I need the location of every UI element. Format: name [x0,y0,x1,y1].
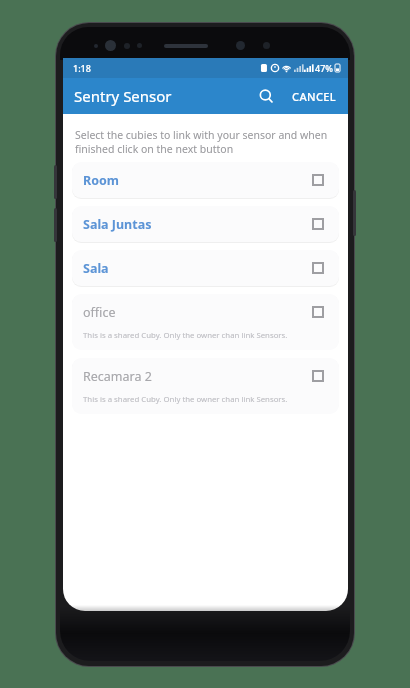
staticText: Sentry Sensor [74,86,172,106]
staticText: office [83,304,116,321]
button: office [72,294,339,350]
button[interactable]: Search [249,79,283,113]
staticText: This is a shared Cuby. Only the owner ch… [83,394,288,405]
staticText: This is a shared Cuby. Only the owner ch… [83,330,288,341]
staticText: Room [83,172,120,189]
button[interactable]: Select Sala Juntas [308,214,328,234]
button[interactable]: Sala Juntas [72,206,339,242]
button: Select office [308,302,328,322]
button: Select Recamara 2 [308,366,328,386]
staticText: Select the cubies to link with your sens… [75,128,328,156]
button[interactable]: Room [72,162,339,198]
button[interactable]: CANCEL [283,81,346,112]
staticText: CANCEL [292,89,337,104]
staticText: Sala Juntas [83,216,152,233]
staticText: Sala [83,260,109,277]
button[interactable]: Select Room [308,170,328,190]
button: Recamara 2 [72,358,339,414]
staticText: Recamara 2 [83,368,152,385]
button[interactable]: Sala [72,250,339,286]
staticText: 47% [315,62,333,74]
staticText: 1:18 [73,62,91,74]
button[interactable]: Select Sala [308,258,328,278]
